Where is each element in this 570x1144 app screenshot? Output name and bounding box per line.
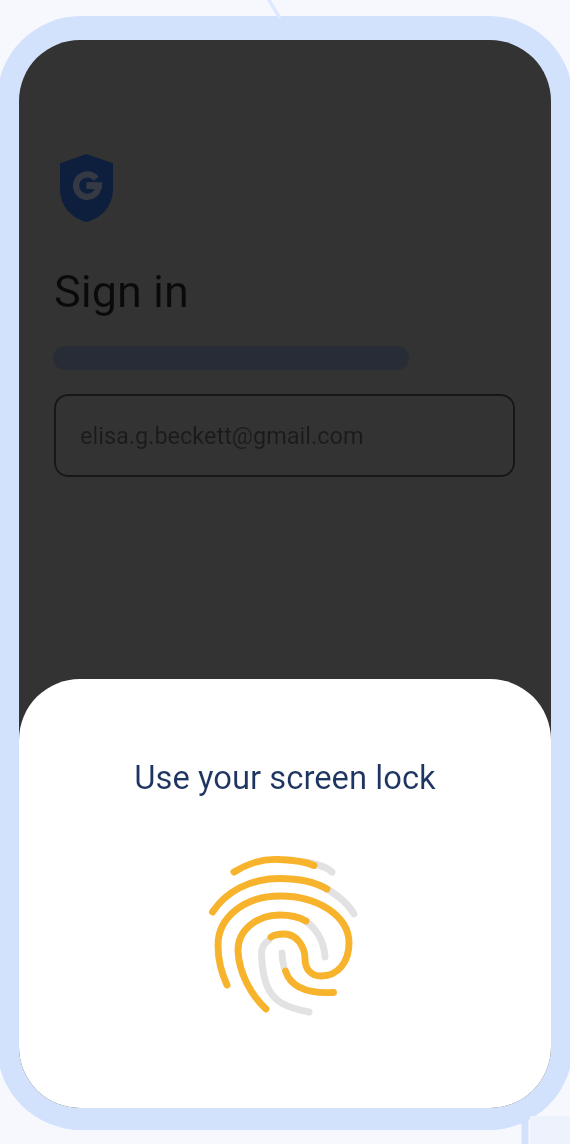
staticText: elisa.g.beckett@gmail.com	[80, 422, 364, 450]
staticText: Use your screen lock	[19, 759, 551, 797]
staticText: Sign in	[54, 265, 189, 318]
button[interactable]: elisa.g.beckett@gmail.com	[54, 394, 515, 477]
button[interactable]: Fingerprint sensor	[199, 845, 364, 1015]
